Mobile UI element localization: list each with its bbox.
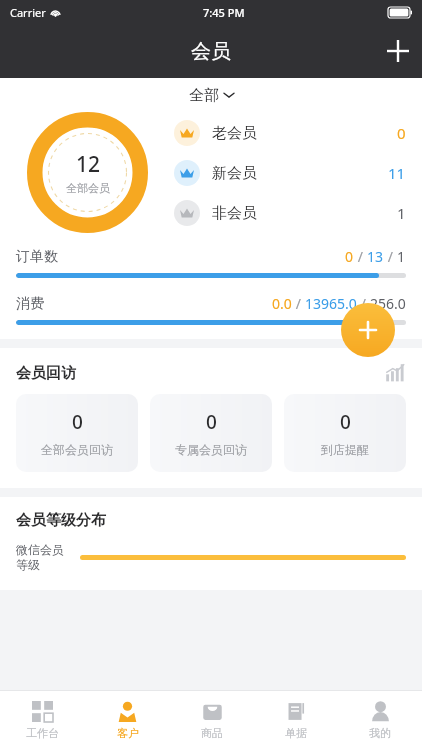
staticText: / (384, 247, 397, 266)
staticText: 我的 (369, 726, 391, 740)
button[interactable]: Add (341, 303, 395, 357)
button[interactable]: Chart (384, 362, 406, 384)
staticText: / (357, 294, 370, 313)
staticText: 256.0 (370, 294, 406, 313)
staticText: 会员等级分布 (16, 511, 106, 530)
button[interactable]: 全部 (0, 78, 422, 112)
staticText: 0 (340, 409, 351, 435)
button[interactable]: Add member (374, 27, 422, 75)
button[interactable]: 商品 (170, 691, 254, 750)
staticText: 非会员 (212, 204, 257, 223)
staticText: 1 (397, 203, 406, 223)
staticText: / (292, 294, 305, 313)
staticText: 消费 (16, 295, 44, 313)
button[interactable]: 工作台 (0, 691, 85, 750)
staticText: 12 (76, 150, 101, 179)
button[interactable]: 0 (16, 394, 138, 472)
staticText: 会员 (191, 39, 231, 64)
staticText: 1 (397, 247, 406, 266)
staticText: 0 (397, 123, 406, 143)
staticText: 专属会员回访 (175, 442, 247, 457)
button[interactable]: 我的 (338, 691, 422, 750)
staticText: 13965.0 (305, 294, 357, 313)
staticText: 全部 (189, 86, 219, 105)
staticText: 工作台 (26, 726, 59, 740)
staticText: 0 (72, 409, 83, 435)
button[interactable]: 新会员 (174, 160, 406, 186)
button[interactable]: 单据 (254, 691, 338, 750)
button[interactable]: 老会员 (174, 120, 406, 146)
button[interactable]: 非会员 (174, 200, 406, 226)
staticText: 到店提醒 (321, 442, 369, 457)
staticText: 新会员 (212, 164, 257, 183)
staticText: / (354, 247, 367, 266)
staticText: 客户 (117, 726, 139, 740)
button[interactable]: 客户 (85, 691, 170, 750)
staticText: 11 (388, 163, 406, 183)
staticText: 老会员 (212, 124, 257, 143)
staticText: Carrier (10, 5, 46, 20)
staticText: 商品 (201, 726, 223, 740)
staticText: 13 (367, 247, 384, 266)
staticText: 会员回访 (16, 364, 76, 383)
staticText: 等级 (16, 557, 40, 572)
staticText: 微信会员 (16, 542, 64, 557)
staticText: 单据 (285, 726, 307, 740)
staticText: 0.0 (272, 294, 292, 313)
staticText: 全部会员回访 (41, 442, 113, 457)
staticText: 全部会员 (66, 181, 110, 195)
staticText: 订单数 (16, 248, 58, 266)
button[interactable]: 0 (284, 394, 406, 472)
button[interactable]: 0 (150, 394, 272, 472)
staticText: 7:45 PM (203, 5, 245, 20)
staticText: 0 (206, 409, 217, 435)
staticText: 0 (345, 247, 354, 266)
